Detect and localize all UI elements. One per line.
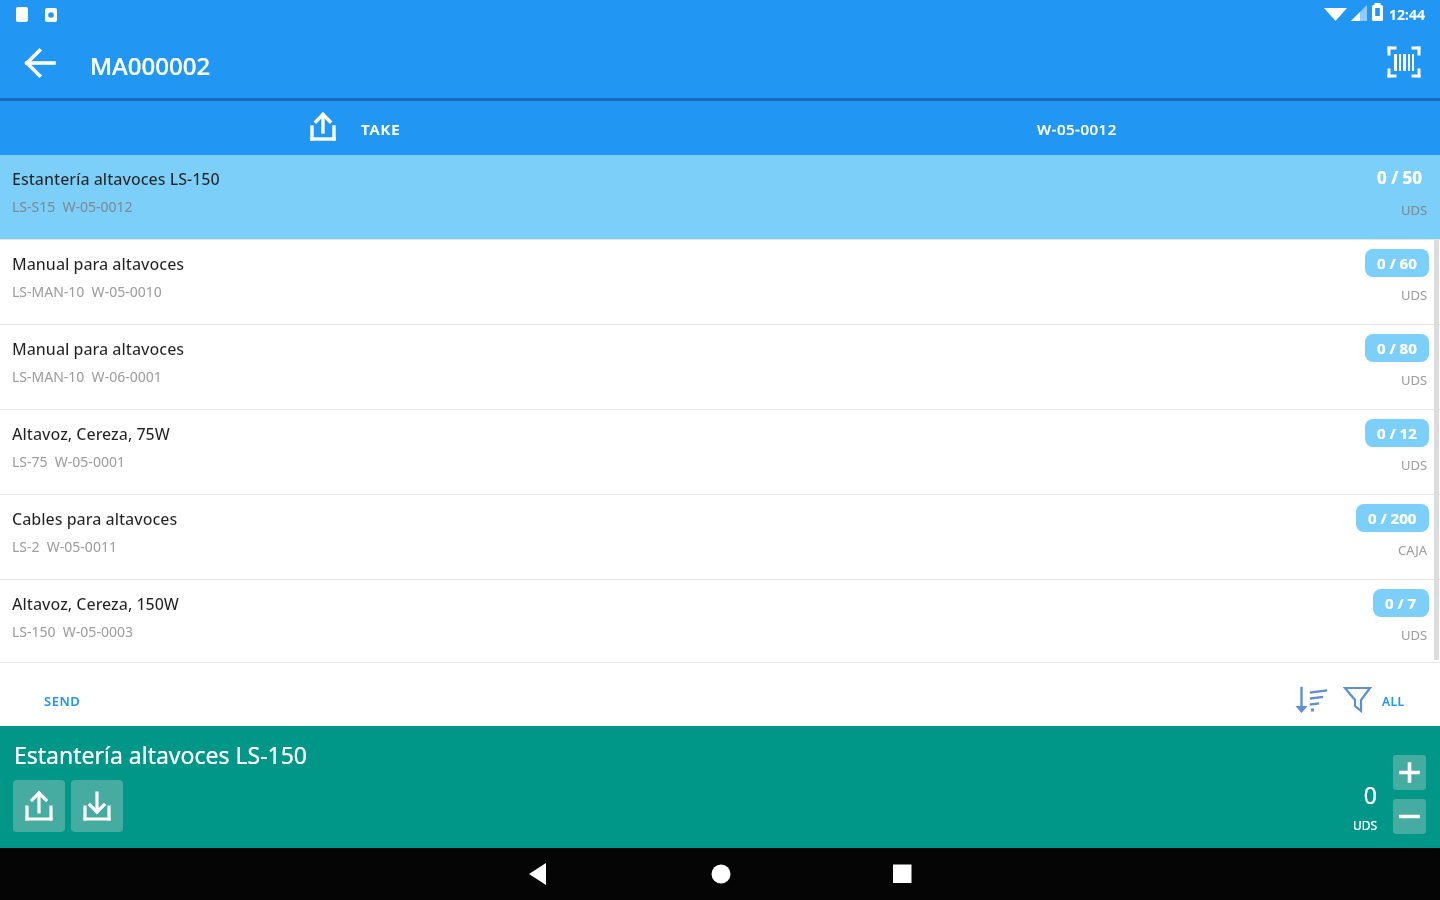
button[interactable] xyxy=(13,780,65,832)
staticText: 0 / 80 xyxy=(1377,338,1417,358)
staticText: UDS xyxy=(1401,456,1428,474)
staticText: 0 xyxy=(1300,779,1377,810)
staticText: LS-S15 W-05-0012 xyxy=(12,197,133,216)
staticText: Manual para altavoces xyxy=(12,338,185,360)
button[interactable] xyxy=(1285,668,1335,721)
button[interactable]: SEND xyxy=(24,671,114,719)
staticText: TAKE xyxy=(361,119,401,139)
button[interactable] xyxy=(16,46,64,82)
staticText: UDS xyxy=(1401,201,1428,219)
button[interactable]: Altavoz, Cereza, 75W xyxy=(0,410,1440,495)
staticText: UDS xyxy=(1300,817,1377,833)
staticText: 0 / 7 xyxy=(1385,593,1417,613)
button[interactable] xyxy=(250,101,470,155)
staticText: 0 / 60 xyxy=(1377,253,1417,273)
staticText: LS-2 W-05-0011 xyxy=(12,537,117,556)
staticText: LS-MAN-10 W-06-0001 xyxy=(12,367,162,386)
button[interactable]: Manual para altavoces xyxy=(0,240,1440,325)
staticText: LS-150 W-05-0003 xyxy=(12,622,133,641)
button[interactable] xyxy=(697,850,745,898)
staticText: 0 / 50 xyxy=(1377,166,1423,189)
button[interactable] xyxy=(878,850,926,898)
staticText: Manual para altavoces xyxy=(12,253,185,275)
staticText: CAJA xyxy=(1398,541,1428,559)
button[interactable] xyxy=(71,780,123,832)
button[interactable]: Cables para altavoces xyxy=(0,495,1440,580)
button[interactable]: Estantería altavoces LS-150 xyxy=(0,155,1440,240)
staticText: Altavoz, Cereza, 75W xyxy=(12,423,170,445)
staticText: UDS xyxy=(1401,626,1428,644)
staticText: Estantería altavoces LS-150 xyxy=(12,168,220,190)
button[interactable] xyxy=(1340,668,1425,721)
staticText: UDS xyxy=(1401,286,1428,304)
staticText: LS-75 W-05-0001 xyxy=(12,452,125,471)
staticText: Estantería altavoces LS-150 xyxy=(14,739,308,770)
staticText: 0 / 200 xyxy=(1368,508,1417,528)
staticText: 12:44 xyxy=(1389,5,1425,24)
staticText: SEND xyxy=(44,692,81,710)
staticText: Cables para altavoces xyxy=(12,508,178,530)
button[interactable] xyxy=(1393,755,1426,790)
button[interactable] xyxy=(514,850,562,898)
staticText: 0 / 12 xyxy=(1377,423,1417,443)
staticText: W-05-0012 xyxy=(1037,119,1117,139)
button[interactable] xyxy=(1380,40,1428,84)
button[interactable]: Manual para altavoces xyxy=(0,325,1440,410)
staticText: Altavoz, Cereza, 150W xyxy=(12,593,179,615)
button[interactable]: Altavoz, Cereza, 150W xyxy=(0,580,1440,663)
staticText: LS-MAN-10 W-05-0010 xyxy=(12,282,162,301)
staticText: ALL xyxy=(1382,693,1405,709)
staticText: MA000002 xyxy=(90,49,211,82)
button[interactable] xyxy=(1393,799,1426,834)
staticText: UDS xyxy=(1401,371,1428,389)
